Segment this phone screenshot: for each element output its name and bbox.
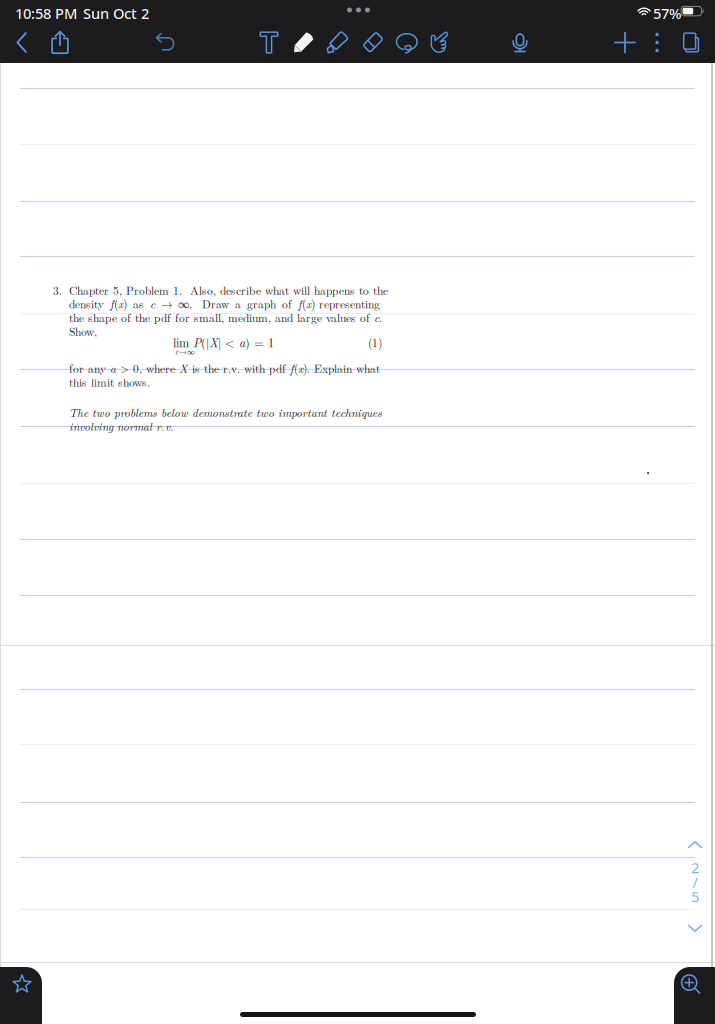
- button[interactable]: Next page: [682, 920, 708, 936]
- staticText: 10:58 PM: [15, 3, 77, 23]
- staticText: the shape of the pdf for small, medium, …: [69, 309, 382, 325]
- staticText: Chapter 5, Problem 1. Also, describe wha…: [69, 282, 388, 298]
- button[interactable]: Bookmark: [0, 967, 42, 1024]
- button[interactable]: Eraser tool: [356, 22, 390, 63]
- staticText: (1): [368, 334, 382, 350]
- button[interactable]: Undo: [149, 22, 183, 63]
- staticText: c→∞: [175, 346, 195, 356]
- staticText: Show,: [69, 323, 97, 339]
- button[interactable]: Lasso tool: [390, 22, 424, 63]
- button[interactable]: Back: [5, 22, 39, 63]
- button[interactable]: Page 2 of 5: [682, 861, 708, 913]
- staticText: The two problems below demonstrate two i…: [69, 404, 382, 420]
- button[interactable]: Text tool: [252, 22, 286, 63]
- staticText: /: [692, 872, 697, 892]
- staticText: this limit shows.: [69, 374, 150, 390]
- button[interactable]: Page thumbnails: [674, 22, 708, 63]
- staticText: involving normal r.v.: [69, 418, 174, 434]
- staticText: 2: [691, 858, 699, 877]
- staticText: 5: [691, 887, 699, 906]
- staticText: 57%: [653, 3, 681, 23]
- staticText: density f(x) as c → ∞. Draw a graph of f…: [69, 296, 380, 311]
- button[interactable]: Record audio: [503, 22, 537, 63]
- button[interactable]: Highlighter tool: [321, 22, 355, 63]
- button[interactable]: Previous page: [682, 837, 708, 853]
- button[interactable]: Share: [43, 22, 77, 63]
- button[interactable]: Add page: [608, 22, 642, 63]
- staticText: lim P(|X| < a) = 1: [173, 334, 274, 351]
- button[interactable]: Zoom in: [674, 967, 715, 1024]
- staticText: 3.: [53, 282, 62, 298]
- button[interactable]: More options: [640, 22, 674, 63]
- staticText: Sun Oct 2: [83, 3, 149, 23]
- staticText: for any a > 0, where X is the r.v. with …: [69, 360, 380, 376]
- button[interactable]: Pen tool: [286, 22, 320, 63]
- button[interactable]: Hand tool: [423, 22, 457, 63]
